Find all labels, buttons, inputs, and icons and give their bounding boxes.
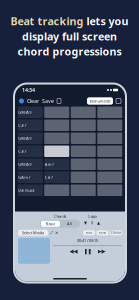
staticText: ❚❚ [83, 248, 91, 254]
staticText: Chorus [111, 231, 121, 234]
button[interactable] [97, 158, 122, 170]
button[interactable]: GAm7 [18, 171, 43, 183]
staticText: Instruments [89, 98, 110, 104]
button[interactable] [71, 145, 96, 157]
staticText: Clear [27, 97, 39, 105]
button[interactable]: Expand [116, 98, 121, 103]
staticText: D#7sus4 [18, 188, 34, 193]
button[interactable] [97, 184, 122, 196]
staticText: All [67, 221, 72, 226]
staticText: ▼ [84, 220, 87, 225]
button[interactable] [71, 171, 96, 183]
staticText: lets you [86, 14, 128, 28]
staticText: Verse [98, 231, 106, 234]
staticText: GM/A9 [18, 162, 31, 167]
staticText: Beat tracking [10, 14, 83, 28]
button[interactable] [97, 119, 122, 131]
button[interactable] [71, 184, 96, 196]
staticText: 00:41 / 03:15 [77, 238, 98, 243]
button[interactable]: C#7 [44, 171, 69, 183]
button[interactable] [97, 132, 122, 144]
button[interactable]: D#7sus4 [18, 184, 43, 196]
button[interactable]: Instruments [87, 97, 113, 105]
button[interactable] [71, 132, 96, 144]
button[interactable]: Clear [27, 97, 39, 105]
staticText: 0 [91, 220, 93, 225]
staticText: Save [42, 97, 54, 105]
button[interactable] [71, 106, 96, 118]
staticText: Chords [53, 213, 66, 219]
staticText: GM/A9 [18, 136, 31, 141]
button[interactable] [44, 145, 69, 157]
staticText: 14:34 [22, 86, 35, 94]
button[interactable] [97, 145, 122, 157]
button[interactable] [97, 106, 122, 118]
button[interactable] [44, 106, 69, 118]
staticText: Am7 [45, 162, 54, 167]
button[interactable]: GM/A9 [18, 132, 43, 144]
button[interactable]: GM/A9 [18, 158, 43, 170]
staticText: ▶▶ [97, 248, 105, 254]
staticText: C#7 [18, 123, 26, 128]
staticText: chord progressions [17, 44, 121, 58]
button[interactable] [71, 158, 96, 170]
staticText: GAm7 [18, 175, 30, 180]
button[interactable]: GM/A9 [18, 106, 43, 118]
staticText: C#7 [18, 149, 26, 154]
button[interactable] [97, 171, 122, 183]
staticText: Capo [87, 213, 96, 219]
staticText: ◀◀ [69, 248, 77, 254]
button[interactable]: C#7 [18, 119, 43, 131]
button[interactable] [44, 119, 69, 131]
staticText: Intro [85, 231, 92, 234]
button[interactable] [71, 119, 96, 131]
staticText: Basic [45, 221, 55, 226]
staticText: C#7 [45, 175, 53, 180]
button[interactable]: Am7 [44, 158, 69, 170]
staticText: ✕ [55, 230, 58, 235]
button[interactable]: Record [19, 98, 24, 103]
button[interactable]: Delete [57, 98, 61, 103]
staticText: GM/A9 [18, 110, 31, 115]
staticText: Select Media [22, 230, 44, 235]
button[interactable]: C#7 [18, 145, 43, 157]
staticText: display full screen [22, 29, 117, 43]
button[interactable] [44, 184, 69, 196]
button[interactable] [44, 132, 69, 144]
staticText: ▲ [97, 220, 100, 225]
staticText: ⤢ [50, 231, 53, 235]
button[interactable]: Save [42, 97, 54, 105]
